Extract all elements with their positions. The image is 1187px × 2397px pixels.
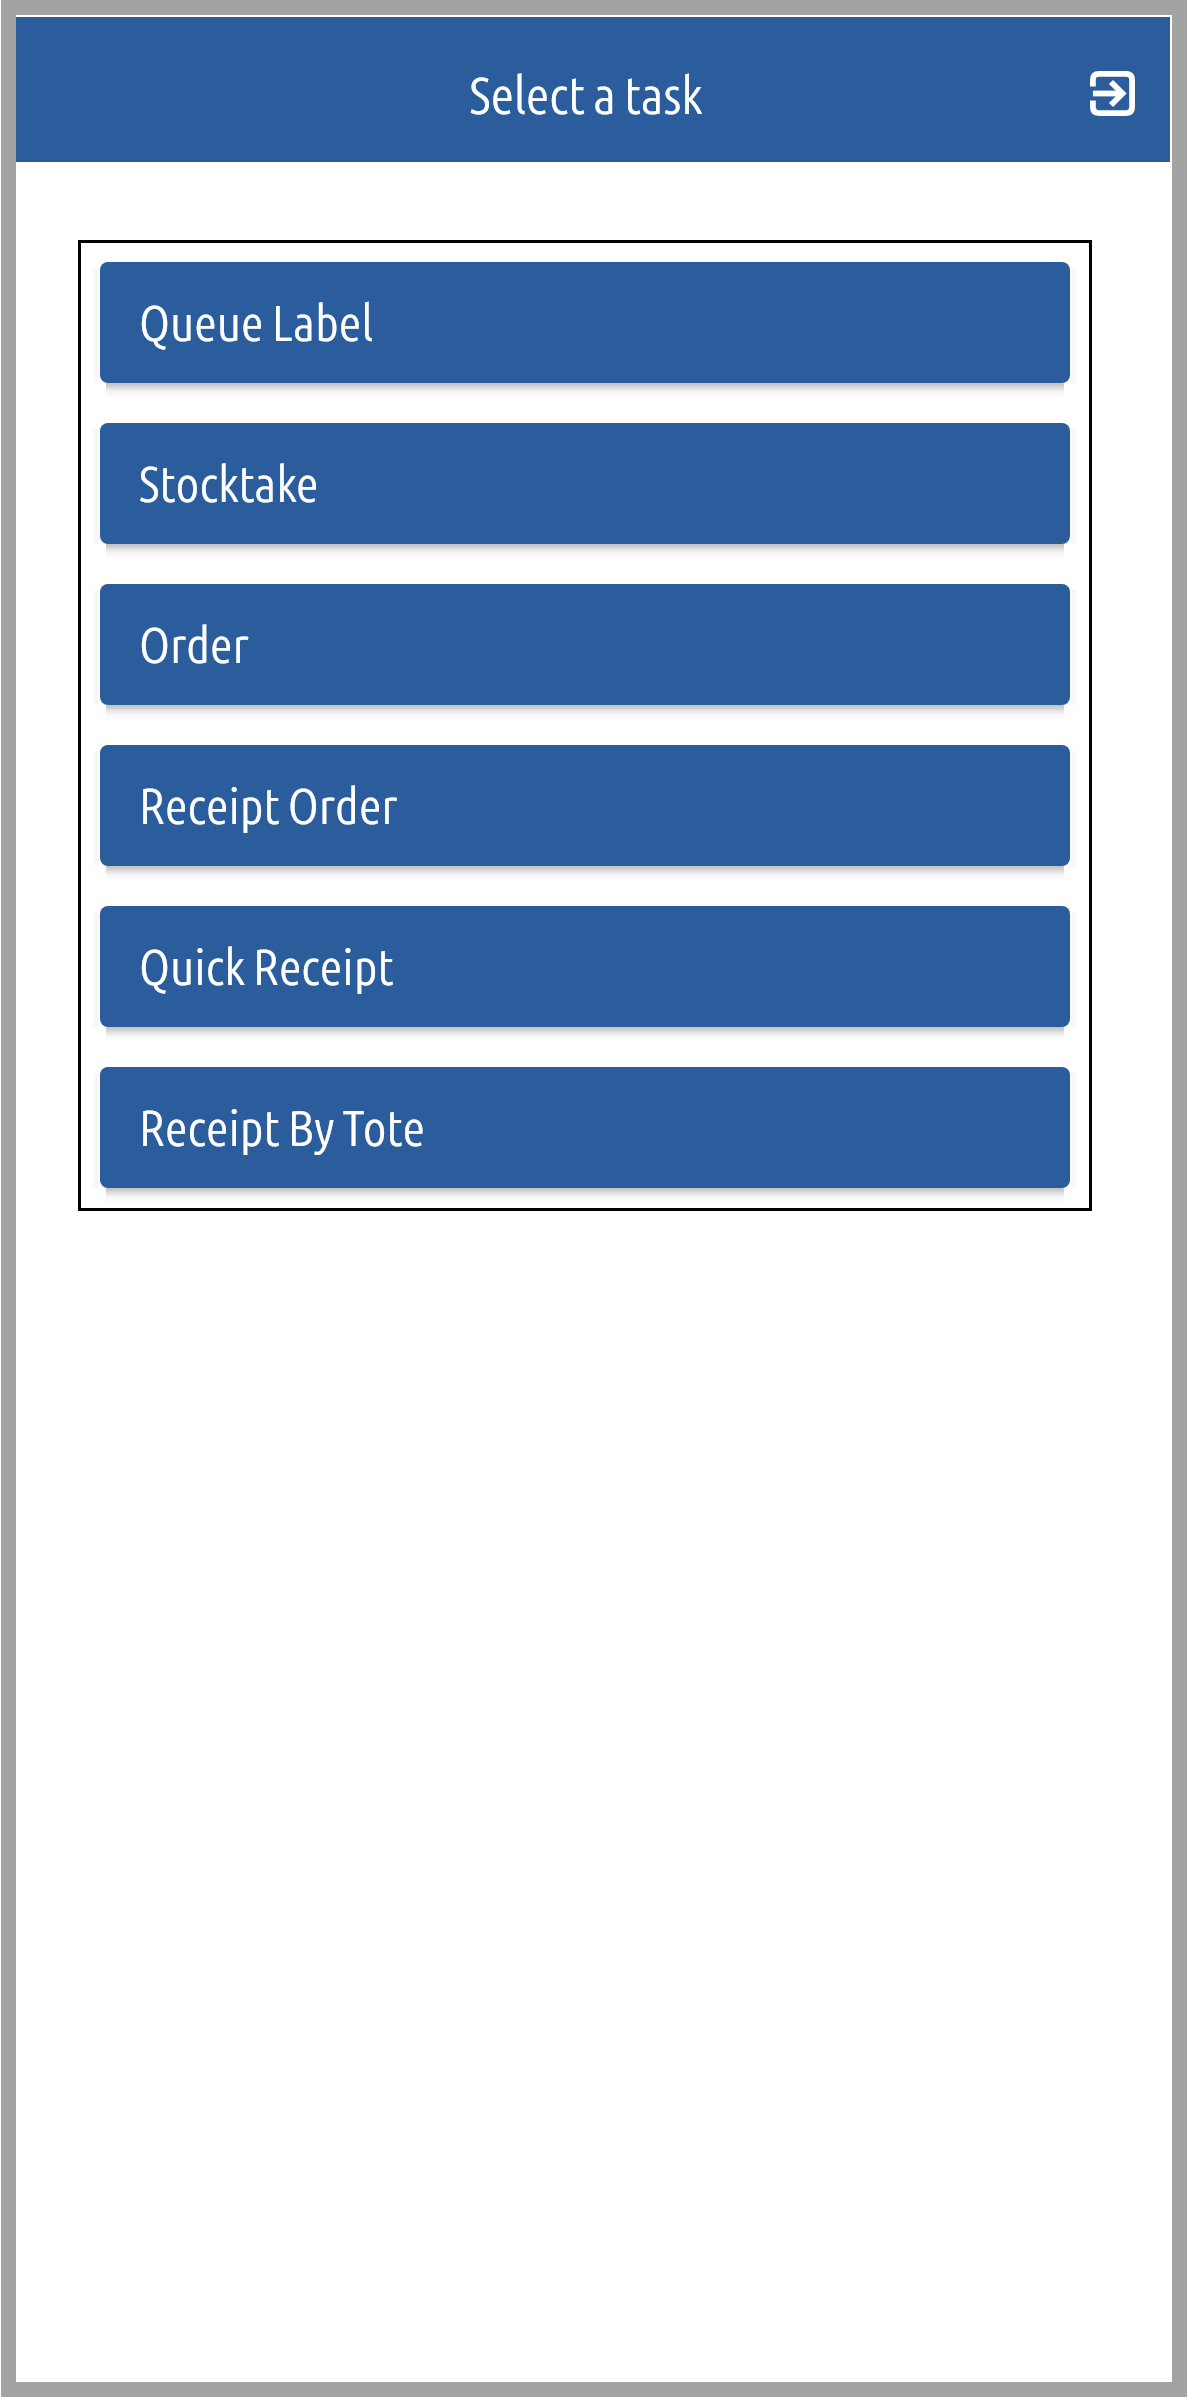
staticText: Quick Receipt bbox=[139, 938, 394, 994]
button[interactable]: Quick Receipt bbox=[100, 906, 1070, 1027]
staticText: Receipt By Tote bbox=[139, 1099, 425, 1155]
button[interactable]: Receipt Order bbox=[100, 745, 1070, 866]
staticText: Queue Label bbox=[139, 294, 374, 350]
button[interactable]: Stocktake bbox=[100, 423, 1070, 544]
staticText: Order bbox=[139, 616, 249, 672]
button[interactable]: Receipt By Tote bbox=[100, 1067, 1070, 1188]
staticText: Select a task bbox=[9, 66, 1163, 124]
button[interactable]: Log out bbox=[1072, 53, 1152, 133]
button[interactable]: Queue Label bbox=[100, 262, 1070, 383]
staticText: Receipt Order bbox=[139, 777, 398, 833]
button[interactable]: Order bbox=[100, 584, 1070, 705]
staticText: Stocktake bbox=[139, 455, 319, 511]
